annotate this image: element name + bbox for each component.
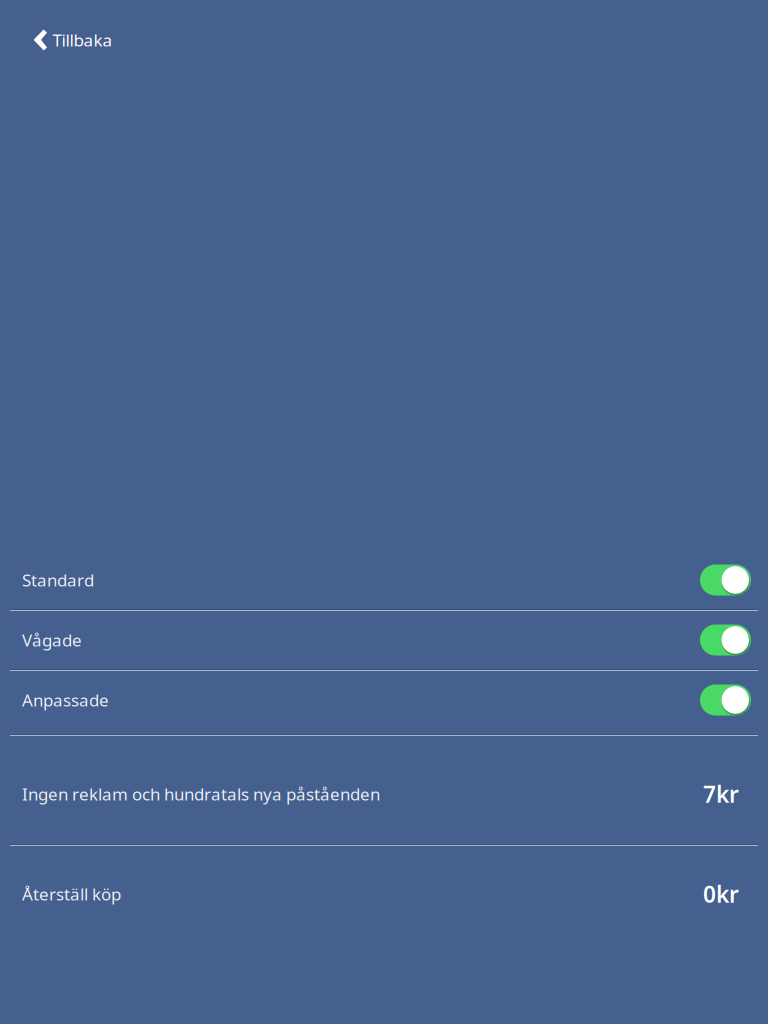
staticText: Anpassade	[22, 688, 109, 712]
button[interactable]: Standard	[0, 551, 768, 609]
staticText: 7kr	[703, 779, 739, 809]
staticText: Vågade	[22, 628, 82, 652]
staticText: 0kr	[703, 879, 739, 909]
button[interactable]: Vågade	[0, 611, 768, 669]
staticText: Återställ köp	[22, 882, 121, 906]
staticText: Standard	[22, 568, 94, 592]
button[interactable]: Anpassade	[0, 671, 768, 729]
staticText: Tillbaka	[52, 28, 112, 52]
button[interactable]: Ingen reklam och hundratals nya påståend…	[0, 736, 768, 844]
button[interactable]: Tillbaka	[0, 18, 124, 62]
button[interactable]: Återställ köp	[0, 846, 768, 954]
staticText: Ingen reklam och hundratals nya påståend…	[22, 782, 380, 806]
